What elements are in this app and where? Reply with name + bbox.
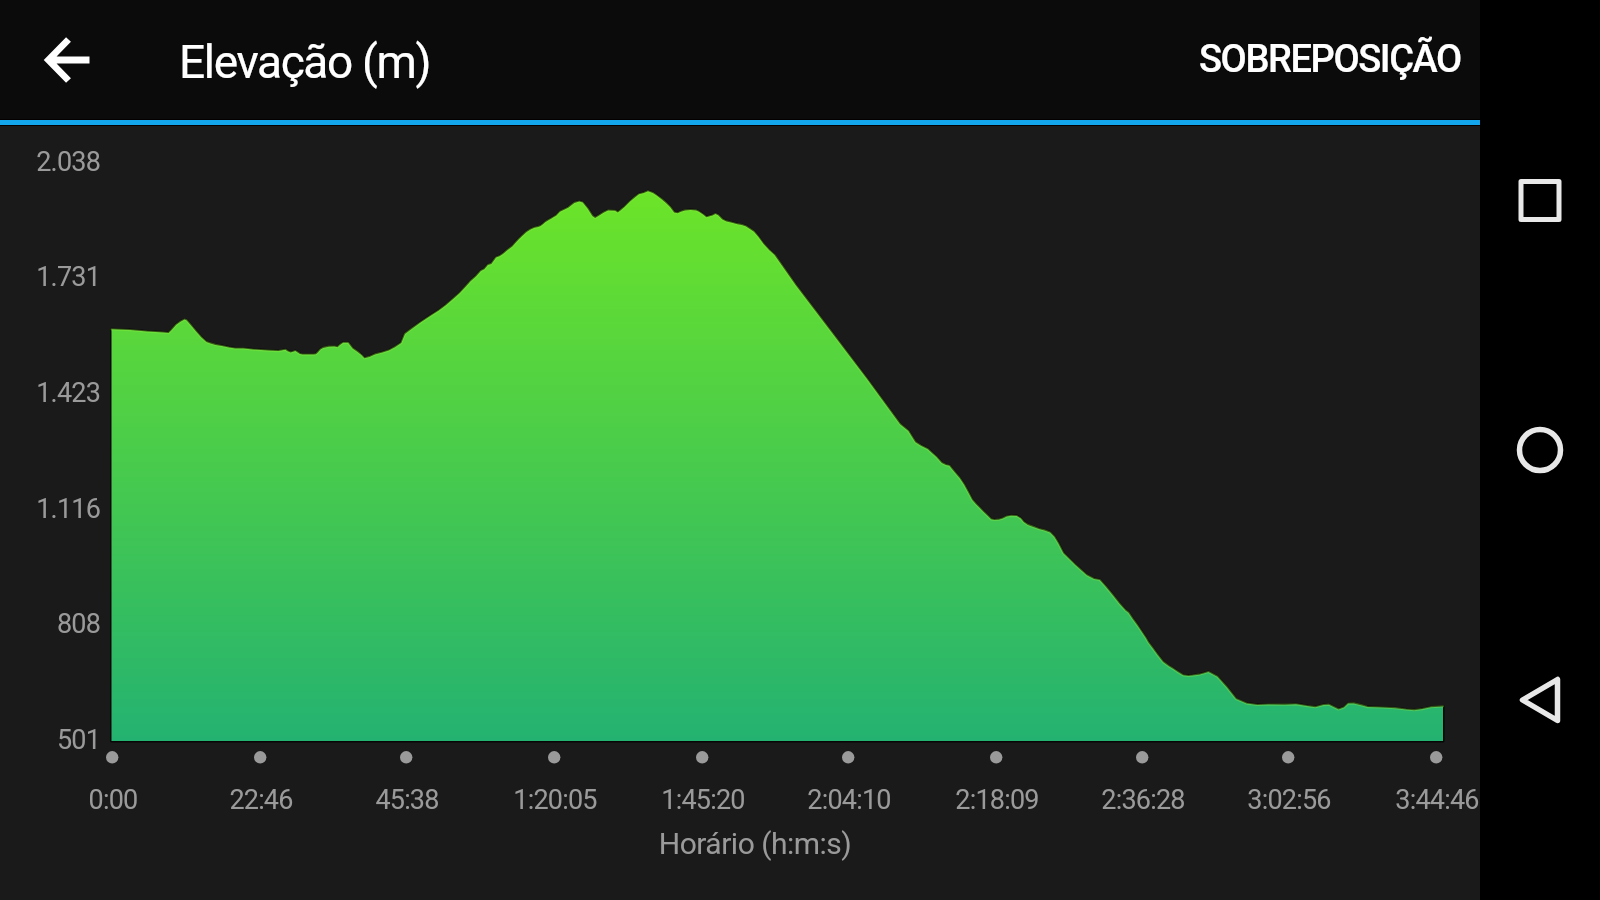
staticText: 1:45:20 [603, 784, 803, 816]
staticText: 0:00 [13, 784, 213, 816]
staticText: Horário (h:m:s) [15, 826, 1495, 861]
button[interactable]: Back [1480, 650, 1600, 750]
staticText: 808 [0, 608, 100, 640]
button[interactable]: SOBREPOSIÇÃO [1169, 0, 1480, 119]
staticText: 2:04:10 [749, 784, 949, 816]
staticText: SOBREPOSIÇÃO [1199, 37, 1461, 82]
staticText: 1:20:05 [455, 784, 655, 816]
staticText: 22:46 [161, 784, 361, 816]
button[interactable]: Recent apps [1480, 150, 1600, 250]
staticText: 3:44:46 [1337, 784, 1537, 816]
button[interactable]: Home [1480, 400, 1600, 500]
staticText: 45:38 [307, 784, 507, 816]
staticText: 1.423 [0, 377, 100, 409]
staticText: 1.116 [0, 493, 100, 525]
staticText: 3:02:56 [1189, 784, 1389, 816]
staticText: 501 [0, 724, 100, 756]
staticText: 2:36:28 [1043, 784, 1243, 816]
staticText: 2.038 [0, 146, 100, 178]
staticText: Elevação (m) [179, 35, 431, 89]
staticText: 1.731 [0, 261, 100, 293]
button[interactable]: Back [10, 0, 128, 119]
staticText: 2:18:09 [897, 784, 1097, 816]
